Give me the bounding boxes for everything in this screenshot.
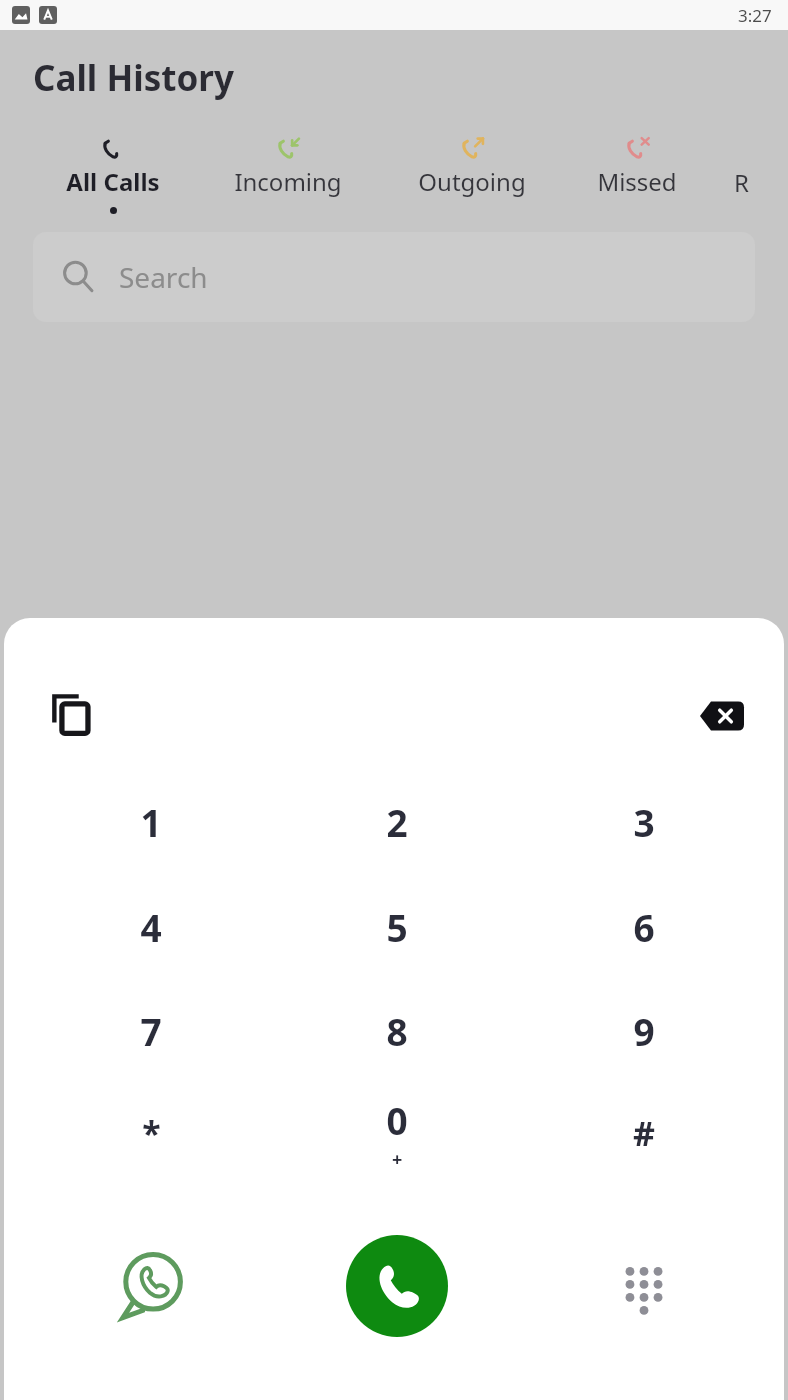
button[interactable]: Outgoing — [386, 128, 558, 220]
staticText: R — [734, 166, 749, 199]
button[interactable]: Search — [33, 232, 755, 322]
button[interactable]: 2 — [315, 770, 479, 874]
staticText: * — [142, 1110, 161, 1156]
staticText: 2 — [386, 797, 408, 847]
button[interactable]: Call — [346, 1235, 448, 1337]
button[interactable]: 0 — [315, 1081, 479, 1185]
staticText: 3:27 — [738, 4, 772, 27]
button[interactable]: Paste — [42, 684, 102, 744]
button[interactable]: All Calls — [27, 128, 199, 220]
staticText: 6 — [633, 902, 655, 952]
button[interactable]: Dialpad — [600, 1242, 688, 1330]
staticText: # — [633, 1110, 655, 1156]
button[interactable]: 8 — [315, 979, 479, 1083]
button[interactable]: Incoming — [202, 128, 374, 220]
staticText: 5 — [386, 902, 408, 952]
button[interactable]: 3 — [562, 770, 726, 874]
staticText: Call History — [33, 54, 234, 102]
staticText: 4 — [140, 902, 162, 952]
staticText: 8 — [386, 1006, 408, 1056]
staticText: 1 — [140, 797, 162, 847]
staticText: + — [392, 1147, 403, 1172]
staticText: Incoming — [234, 165, 342, 198]
button[interactable]: 1 — [69, 770, 233, 874]
staticText: Missed — [597, 165, 677, 198]
button[interactable]: Missed — [551, 128, 723, 220]
staticText: Search — [119, 258, 208, 296]
button[interactable]: * — [69, 1081, 233, 1185]
button[interactable]: Backspace — [694, 688, 750, 744]
staticText: 0 — [386, 1095, 408, 1145]
button[interactable]: R — [728, 128, 786, 220]
staticText: 3 — [633, 797, 655, 847]
button[interactable]: 6 — [562, 875, 726, 979]
button[interactable]: 5 — [315, 875, 479, 979]
button[interactable]: 4 — [69, 875, 233, 979]
button[interactable]: 7 — [69, 979, 233, 1083]
button[interactable]: 9 — [562, 979, 726, 1083]
staticText: Outgoing — [418, 165, 526, 198]
button[interactable]: # — [562, 1081, 726, 1185]
staticText: All Calls — [66, 165, 160, 198]
button[interactable]: WhatsApp call — [103, 1238, 199, 1334]
staticText: 7 — [140, 1006, 162, 1056]
staticText: 9 — [633, 1006, 655, 1056]
